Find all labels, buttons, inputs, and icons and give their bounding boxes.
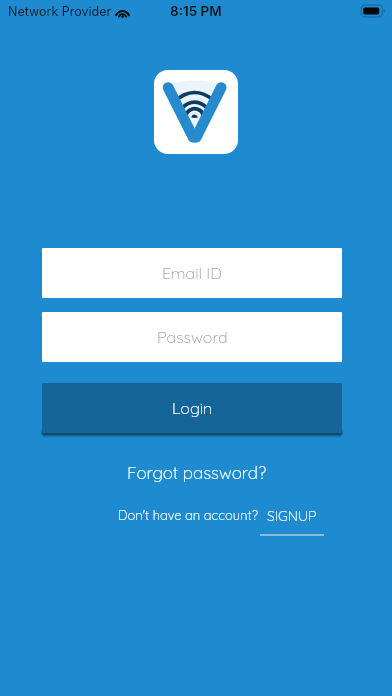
button[interactable]: Password xyxy=(42,312,342,362)
staticText: SIGNUP xyxy=(267,507,317,525)
staticText: Login xyxy=(172,398,213,418)
staticText: 8:15 PM xyxy=(170,3,222,19)
staticText: Email ID xyxy=(162,263,222,283)
staticText: Password xyxy=(157,327,228,347)
button[interactable]: Login xyxy=(42,383,342,433)
button[interactable]: Email ID xyxy=(42,248,342,298)
button[interactable]: Forgot password? xyxy=(127,462,266,483)
staticText: Network Provider xyxy=(8,4,112,19)
button[interactable]: SIGNUP xyxy=(258,507,326,536)
staticText: Don't have an account? xyxy=(118,507,258,523)
